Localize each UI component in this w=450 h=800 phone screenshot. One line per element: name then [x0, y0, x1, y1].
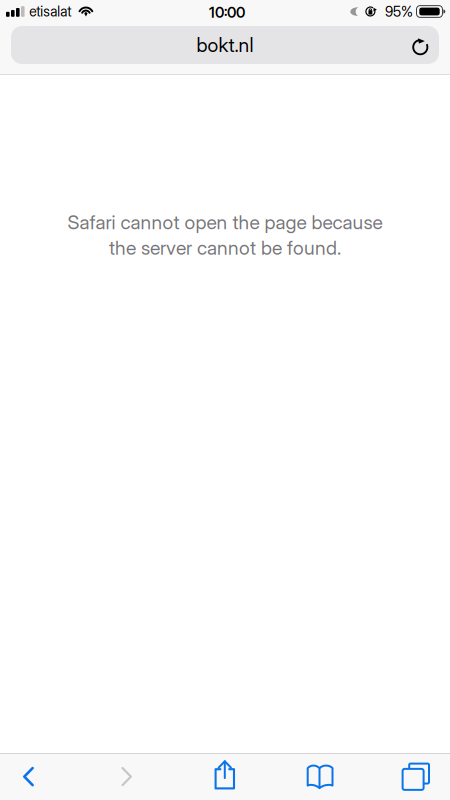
button[interactable]: Bookmarks	[295, 754, 352, 800]
staticText: Safari cannot open the page because	[67, 210, 382, 234]
staticText: bokt.nl	[196, 33, 253, 57]
staticText: 10:00	[209, 3, 245, 21]
button[interactable]: Forward	[98, 754, 155, 800]
button[interactable]: Share	[196, 754, 253, 800]
button[interactable]: bokt.nl	[0, 26, 450, 64]
staticText: etisalat	[29, 3, 71, 20]
button[interactable]: Back	[0, 754, 57, 800]
staticText: 95%	[385, 3, 413, 20]
staticText: the server cannot be found.	[109, 236, 341, 259]
button[interactable]: Tabs	[393, 754, 450, 800]
